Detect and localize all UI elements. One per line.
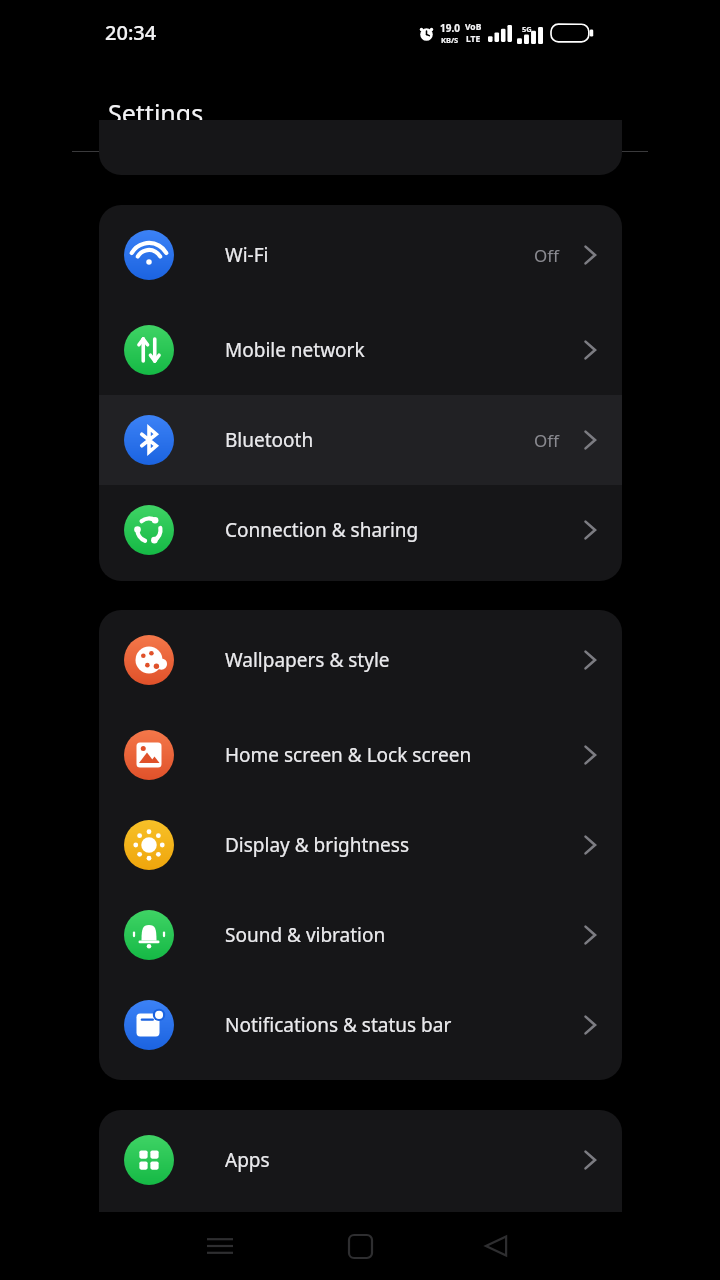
staticText: Connection & sharing	[225, 517, 583, 543]
staticText: Home screen & Lock screen	[225, 742, 583, 768]
button[interactable]: Mobile network	[99, 305, 622, 395]
staticText: Mobile network	[225, 337, 583, 363]
staticText: KB/S	[441, 35, 459, 45]
staticText: Wallpapers & style	[225, 647, 583, 673]
staticText: Bluetooth	[225, 427, 534, 453]
staticText: 20:34	[105, 19, 157, 46]
button[interactable]: Recent apps	[186, 1212, 254, 1280]
button[interactable]: Bluetooth	[99, 395, 622, 485]
staticText: Off	[534, 244, 559, 267]
staticText: VoB	[465, 21, 482, 33]
button[interactable]: Wi-Fi	[99, 205, 622, 305]
staticText: Settings	[108, 96, 204, 130]
staticText: Sound & vibration	[225, 922, 583, 948]
staticText: 5G	[522, 24, 532, 34]
button[interactable]: Apps	[99, 1110, 622, 1210]
button[interactable]: Connection & sharing	[99, 485, 622, 575]
button[interactable]: Display & brightness	[99, 800, 622, 890]
button[interactable]: Sound & vibration	[99, 890, 622, 980]
button[interactable]: Notifications & status bar	[99, 980, 622, 1070]
button[interactable]: Home	[326, 1212, 394, 1280]
button[interactable]: Home screen & Lock screen	[99, 710, 622, 800]
staticText: 19.0	[440, 21, 460, 35]
staticText: Notifications & status bar	[225, 1012, 583, 1038]
staticText: Wi-Fi	[225, 242, 534, 268]
staticText: LTE	[466, 33, 481, 45]
staticText: Display & brightness	[225, 832, 583, 858]
staticText: Off	[534, 429, 559, 452]
button[interactable]: Wallpapers & style	[99, 610, 622, 710]
button[interactable]: Back	[462, 1212, 530, 1280]
staticText: Apps	[225, 1147, 583, 1173]
